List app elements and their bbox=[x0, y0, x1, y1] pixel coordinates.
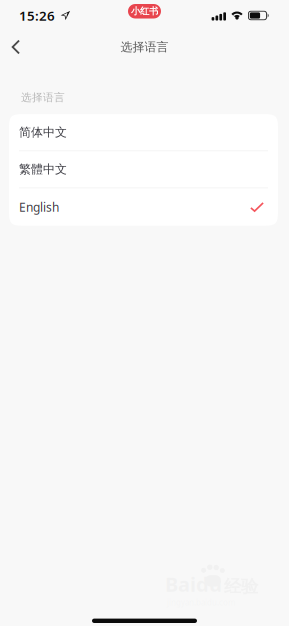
staticText: 15:26 bbox=[19, 7, 55, 24]
staticText: Baidu bbox=[165, 571, 222, 597]
staticText: 选择语言 bbox=[21, 91, 65, 104]
staticText: 简体中文 bbox=[19, 125, 67, 140]
button[interactable]: Back bbox=[0, 30, 34, 64]
button[interactable]: English bbox=[9, 188, 278, 226]
staticText: English bbox=[19, 199, 59, 215]
staticText: 小红书 bbox=[131, 5, 158, 17]
staticText: 繁體中文 bbox=[19, 162, 67, 177]
staticText: 选择语言 bbox=[120, 40, 168, 54]
button[interactable]: 简体中文 bbox=[9, 114, 278, 151]
button[interactable]: 繁體中文 bbox=[9, 151, 278, 188]
